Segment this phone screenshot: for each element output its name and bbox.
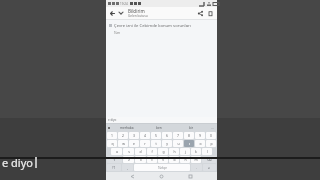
button[interactable]: l bbox=[202, 148, 212, 155]
staticText: 4 bbox=[144, 133, 146, 138]
button[interactable]: Expand bbox=[117, 9, 125, 17]
button[interactable]: y bbox=[162, 140, 172, 147]
staticText: r bbox=[144, 141, 146, 146]
button[interactable]: s bbox=[123, 148, 134, 155]
staticText: 9 bbox=[199, 133, 201, 138]
staticText: Bildirim bbox=[128, 8, 145, 14]
button[interactable]: 9 bbox=[195, 132, 205, 139]
button[interactable]: Symbols bbox=[107, 164, 121, 171]
staticText: s bbox=[128, 149, 130, 154]
button[interactable]: 6 bbox=[162, 132, 172, 139]
staticText: f bbox=[151, 149, 153, 154]
button[interactable]: Delete bbox=[205, 8, 215, 18]
staticText: a bbox=[116, 149, 118, 154]
button[interactable]: merhaba bbox=[111, 124, 143, 131]
staticText: o bbox=[199, 141, 202, 146]
staticText: ⌫ bbox=[207, 158, 212, 162]
button[interactable]: Shift bbox=[107, 156, 122, 163]
staticText: n bbox=[184, 157, 187, 162]
button[interactable]: x bbox=[135, 156, 146, 163]
staticText: merhaba bbox=[120, 126, 134, 130]
button[interactable]: Home bbox=[159, 174, 164, 179]
button[interactable]: Enter bbox=[203, 164, 216, 171]
button[interactable]: Back bbox=[108, 9, 117, 18]
button[interactable]: n bbox=[180, 156, 190, 163]
button[interactable]: Space bbox=[134, 164, 190, 171]
button[interactable]: k bbox=[191, 148, 201, 155]
staticText: ?1 bbox=[112, 166, 116, 170]
button[interactable]: m bbox=[191, 156, 201, 163]
button[interactable]: g bbox=[158, 148, 168, 155]
button[interactable]: 1 bbox=[107, 132, 117, 139]
button[interactable]: q bbox=[107, 140, 117, 147]
staticText: t bbox=[155, 141, 157, 146]
button[interactable]: Back bbox=[130, 174, 135, 179]
staticText: Tüm bbox=[114, 31, 121, 35]
staticText: e diyo bbox=[2, 155, 33, 170]
button[interactable]: Recents bbox=[188, 174, 193, 179]
staticText: m bbox=[194, 157, 198, 162]
button[interactable]: r bbox=[140, 140, 150, 147]
staticText: k bbox=[195, 149, 197, 154]
staticText: x bbox=[140, 157, 142, 162]
button[interactable]: 3 bbox=[129, 132, 139, 139]
button[interactable]: e diyo bbox=[106, 117, 217, 123]
button[interactable]: 7 bbox=[173, 132, 183, 139]
button[interactable]: More suggestions bbox=[207, 124, 217, 131]
button[interactable]: Bildirim bbox=[128, 8, 195, 18]
button[interactable]: ben bbox=[143, 124, 175, 131]
button[interactable]: 5 bbox=[151, 132, 161, 139]
button[interactable]: o bbox=[195, 140, 205, 147]
staticText: Türkçe bbox=[158, 166, 167, 170]
button[interactable]: b bbox=[169, 156, 179, 163]
button[interactable]: a bbox=[111, 148, 122, 155]
staticText: e diyo bbox=[108, 118, 117, 122]
staticText: 2 bbox=[122, 133, 124, 138]
button[interactable]: t bbox=[151, 140, 161, 147]
staticText: d bbox=[139, 149, 142, 154]
staticText: z bbox=[128, 157, 130, 162]
button[interactable]: v bbox=[158, 156, 168, 163]
button[interactable]: 2 bbox=[118, 132, 128, 139]
staticText: ... bbox=[211, 126, 214, 130]
staticText: 3 bbox=[133, 133, 135, 138]
staticText: ⇧ bbox=[113, 158, 116, 162]
staticText: b bbox=[173, 157, 176, 162]
button[interactable]: p bbox=[206, 140, 216, 147]
staticText: l bbox=[207, 149, 208, 154]
staticText: 0 bbox=[210, 133, 212, 138]
staticText: v bbox=[162, 157, 164, 162]
button[interactable]: 8 bbox=[184, 132, 194, 139]
button[interactable]: Backspace bbox=[202, 156, 216, 163]
staticText: 8 bbox=[188, 133, 190, 138]
staticText: ben bbox=[156, 126, 162, 130]
button[interactable]: z bbox=[123, 156, 134, 163]
button[interactable]: 4 bbox=[140, 132, 150, 139]
staticText: j bbox=[185, 149, 186, 154]
staticText: w bbox=[122, 141, 125, 146]
button[interactable]: bir bbox=[175, 124, 207, 131]
staticText: 1 bbox=[111, 133, 113, 138]
button[interactable]: e bbox=[129, 140, 139, 147]
staticText: 5 bbox=[155, 133, 157, 138]
button[interactable]: j bbox=[180, 148, 190, 155]
staticText: , bbox=[127, 166, 128, 170]
button[interactable]: u bbox=[173, 140, 183, 147]
button[interactable]: Share bbox=[195, 8, 205, 18]
button[interactable]: Comma bbox=[122, 164, 133, 171]
button[interactable]: Voice input bbox=[106, 124, 111, 131]
button[interactable]: h bbox=[169, 148, 179, 155]
button[interactable]: ı bbox=[184, 140, 194, 147]
button[interactable]: d bbox=[135, 148, 146, 155]
staticText: 7 bbox=[177, 133, 179, 138]
button[interactable]: 0 bbox=[206, 132, 216, 139]
button[interactable]: w bbox=[118, 140, 128, 147]
staticText: Çevre izni ile Cebimde konum sorunları bbox=[114, 23, 191, 29]
staticText: p bbox=[210, 141, 213, 146]
button[interactable]: c bbox=[147, 156, 157, 163]
button[interactable]: f bbox=[147, 148, 157, 155]
staticText: ı bbox=[189, 141, 190, 146]
staticText: ↵ bbox=[208, 166, 211, 170]
staticText: 6 bbox=[166, 133, 168, 138]
